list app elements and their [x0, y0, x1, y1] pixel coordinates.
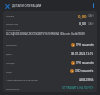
staticText: Кошелёк	[6, 43, 17, 46]
staticText: UAH	[88, 14, 94, 18]
button[interactable]: Комиссия	[3, 20, 97, 27]
staticText: Квитанция	[6, 87, 20, 90]
staticText: ILC34J5DE2KRA1ZKX1N2BT5Y61HW8XA (Bitcoin…	[6, 32, 86, 36]
staticText: Откуда	[6, 61, 15, 64]
button[interactable]: Идентификатор операции	[3, 75, 97, 84]
staticText: Куда	[6, 70, 12, 73]
button[interactable]: Транзакция	[3, 27, 97, 40]
button[interactable]: Кошелёк	[3, 40, 97, 49]
staticText: Идентификатор операции	[6, 78, 38, 81]
staticText: ДЕТАЛИ ОПЕРАЦИИ	[12, 4, 42, 8]
staticText: 0,00	[79, 21, 87, 26]
button[interactable]: Сумма	[3, 11, 97, 20]
staticText: UAH	[88, 22, 94, 26]
button[interactable]: Квитанция	[3, 84, 97, 92]
staticText: 08.07.2024 13:15	[71, 52, 94, 56]
staticText: 448423966	[79, 78, 94, 82]
button[interactable]: Дата	[3, 49, 97, 58]
button[interactable]: Откуда	[3, 58, 97, 67]
staticText: Сумма	[6, 14, 15, 17]
staticText: Дата	[6, 52, 12, 55]
staticText: Комиссия	[6, 22, 18, 25]
staticText: ГРН кошелёк	[76, 61, 94, 65]
button[interactable]: Куда	[3, 67, 97, 75]
staticText: USD кошелёк	[75, 69, 94, 73]
button[interactable]: Close	[4, 3, 10, 9]
staticText: 0,00	[78, 13, 87, 19]
staticText: ГРН кошелёк	[76, 43, 94, 47]
staticText: Транзакция	[6, 28, 21, 31]
staticText: ОТПРАВИТЬ НА ПОЧТУ	[62, 86, 94, 90]
